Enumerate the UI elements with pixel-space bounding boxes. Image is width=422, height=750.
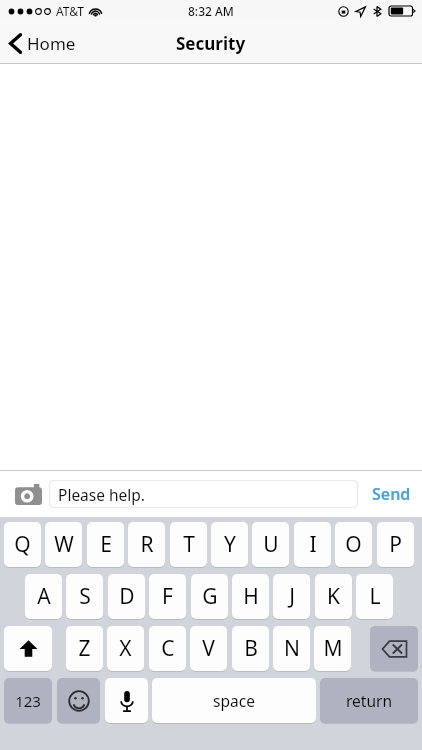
button[interactable]: 123 xyxy=(4,678,52,723)
staticText: T xyxy=(183,530,195,559)
staticText: F xyxy=(162,582,173,611)
button[interactable]: N xyxy=(273,626,310,671)
staticText: J xyxy=(289,582,295,611)
staticText: Send xyxy=(372,483,411,505)
staticText: G xyxy=(202,582,218,611)
staticText: M xyxy=(323,634,343,663)
button[interactable]: B xyxy=(232,626,269,671)
button[interactable]: H xyxy=(232,574,269,619)
staticText: Please help. xyxy=(58,484,146,505)
staticText: W xyxy=(54,530,74,559)
button[interactable]: G xyxy=(191,574,228,619)
button[interactable]: K xyxy=(315,574,352,619)
button[interactable]: I xyxy=(294,522,331,567)
staticText: 123 xyxy=(15,691,41,711)
button[interactable]: Shift xyxy=(4,626,52,671)
staticText: X xyxy=(119,634,132,663)
staticText: O xyxy=(345,530,362,559)
staticText: N xyxy=(284,634,300,663)
button[interactable]: J xyxy=(273,574,310,619)
staticText: I xyxy=(309,530,317,559)
button[interactable]: L xyxy=(356,574,393,619)
button[interactable]: F xyxy=(149,574,186,619)
button[interactable]: E xyxy=(87,522,124,567)
button[interactable]: X xyxy=(107,626,144,671)
button[interactable]: R xyxy=(128,522,165,567)
staticText: 8:32 AM xyxy=(188,3,234,19)
staticText: E xyxy=(100,530,112,559)
staticText: AT&T xyxy=(56,3,84,19)
button[interactable]: Send xyxy=(366,477,417,511)
button[interactable]: Y xyxy=(211,522,248,567)
staticText: R xyxy=(140,530,154,559)
staticText: Y xyxy=(224,530,236,559)
button[interactable]: D xyxy=(108,574,145,619)
button[interactable]: Q xyxy=(4,522,41,567)
staticText: K xyxy=(327,582,340,611)
staticText: Z xyxy=(78,634,91,663)
staticText: space xyxy=(213,690,255,711)
button[interactable]: space xyxy=(152,678,316,723)
staticText: U xyxy=(263,530,279,559)
staticText: D xyxy=(119,582,135,611)
button[interactable]: V xyxy=(190,626,227,671)
button[interactable]: O xyxy=(335,522,372,567)
staticText: L xyxy=(369,582,381,611)
button[interactable]: C xyxy=(149,626,186,671)
staticText: B xyxy=(244,634,258,663)
staticText: Home xyxy=(27,32,76,55)
button[interactable]: Please help. xyxy=(49,480,358,508)
staticText: V xyxy=(202,634,215,663)
button[interactable]: Z xyxy=(66,626,103,671)
staticText: Security xyxy=(176,32,246,55)
button[interactable]: A xyxy=(25,574,62,619)
staticText: A xyxy=(37,582,51,611)
staticText: S xyxy=(79,582,91,611)
button[interactable]: Emoji xyxy=(57,678,100,723)
button[interactable]: S xyxy=(66,574,103,619)
button[interactable]: Camera xyxy=(11,477,45,511)
button[interactable]: Backspace xyxy=(370,626,418,671)
button[interactable]: Dictate xyxy=(105,678,148,723)
button[interactable]: M xyxy=(314,626,351,671)
staticText: return xyxy=(346,690,392,711)
staticText: Q xyxy=(14,530,31,559)
button[interactable]: W xyxy=(45,522,82,567)
staticText: C xyxy=(161,634,175,663)
staticText: P xyxy=(389,530,402,559)
staticText: H xyxy=(243,582,259,611)
button[interactable]: P xyxy=(377,522,414,567)
button[interactable]: U xyxy=(252,522,289,567)
button[interactable]: return xyxy=(320,678,418,723)
button[interactable]: Home xyxy=(0,28,86,59)
button[interactable]: T xyxy=(170,522,207,567)
